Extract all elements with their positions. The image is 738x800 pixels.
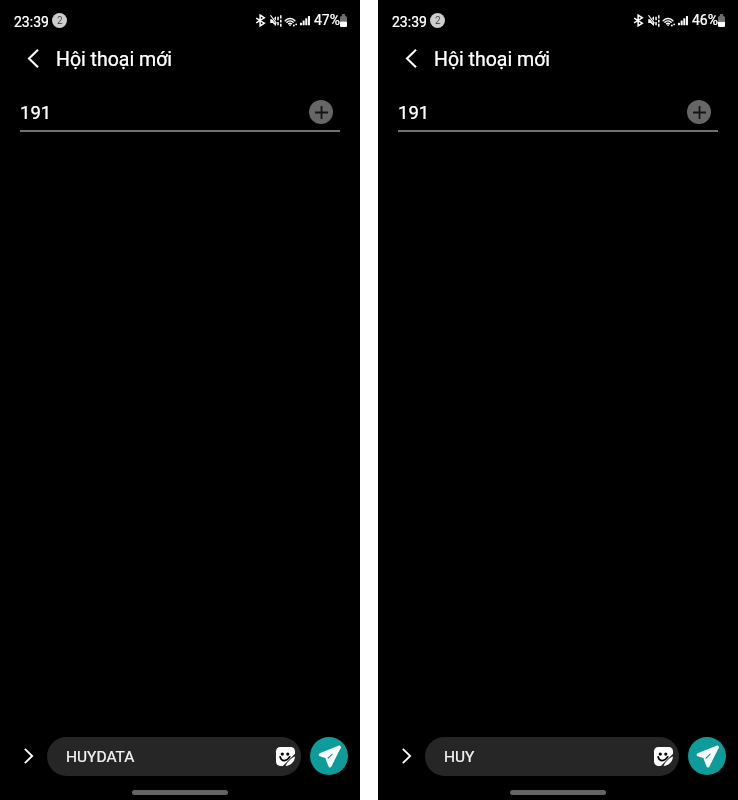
staticText: 47% [314,12,340,28]
staticText: 23:39 [14,14,49,30]
button[interactable]: Add recipient [687,100,711,124]
button[interactable]: Back [394,41,428,75]
button[interactable]: Back [16,41,50,75]
staticText: 191 [398,102,430,124]
staticText: 2 [57,15,63,27]
button[interactable]: Send [688,737,726,775]
button[interactable]: HUY [425,737,679,776]
staticText: 46% [692,12,718,28]
staticText: 191 [20,102,52,124]
button[interactable]: Stickers [654,747,673,766]
staticText: HUYDATA [66,748,135,766]
button[interactable]: Show more options [391,741,421,771]
staticText: 2 [435,15,441,27]
button[interactable]: HUYDATA [47,737,301,776]
button[interactable]: Stickers [276,747,295,766]
staticText: 23:39 [392,14,427,30]
staticText: Hội thoại mới [56,48,173,71]
staticText: Hội thoại mới [434,48,551,71]
button[interactable]: Send [310,737,348,775]
staticText: HUY [444,748,475,766]
button[interactable]: Show more options [13,741,43,771]
button[interactable]: Add recipient [309,100,333,124]
